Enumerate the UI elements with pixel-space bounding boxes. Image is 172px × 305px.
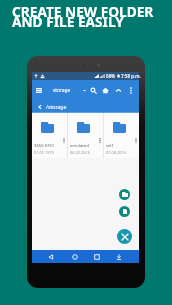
staticText: storage — [53, 87, 71, 94]
button[interactable]: Close menu — [117, 229, 132, 244]
button[interactable]: Back — [44, 250, 57, 263]
button[interactable]: New file — [119, 206, 130, 217]
button[interactable]: Go up — [112, 80, 125, 100]
button[interactable]: More options — [125, 80, 137, 100]
button[interactable]: storage — [53, 80, 87, 100]
staticText: CREATE NEW FOLDER AND FILE EASILY — [12, 2, 154, 31]
staticText: 06-22-2016 — [70, 150, 90, 155]
button[interactable]: Open navigation menu — [33, 80, 45, 100]
button[interactable]: Item options — [61, 136, 67, 145]
button[interactable]: Downloads — [112, 250, 125, 263]
button[interactable]: Recent apps — [90, 250, 103, 263]
button[interactable]: self — [104, 113, 139, 158]
button[interactable]: Home — [99, 80, 112, 100]
button[interactable]: New folder — [119, 189, 130, 200]
button[interactable]: Search — [87, 80, 100, 100]
staticText: 3656 6761 — [34, 143, 55, 149]
staticText: emulated — [70, 143, 89, 149]
button[interactable]: emulated — [68, 113, 103, 158]
staticText: /storage — [46, 103, 67, 110]
button[interactable]: 3656 6761 — [32, 113, 67, 158]
staticText: 66% — [106, 73, 116, 79]
button[interactable]: Item options — [97, 136, 103, 145]
staticText: 07-08-2016 — [106, 150, 126, 155]
staticText: 7:58 p.m. — [121, 73, 141, 79]
button[interactable]: Item options — [133, 136, 139, 145]
staticText: self — [106, 143, 113, 149]
staticText: 01-01-1970 — [34, 150, 54, 155]
button[interactable]: Home — [68, 250, 81, 263]
